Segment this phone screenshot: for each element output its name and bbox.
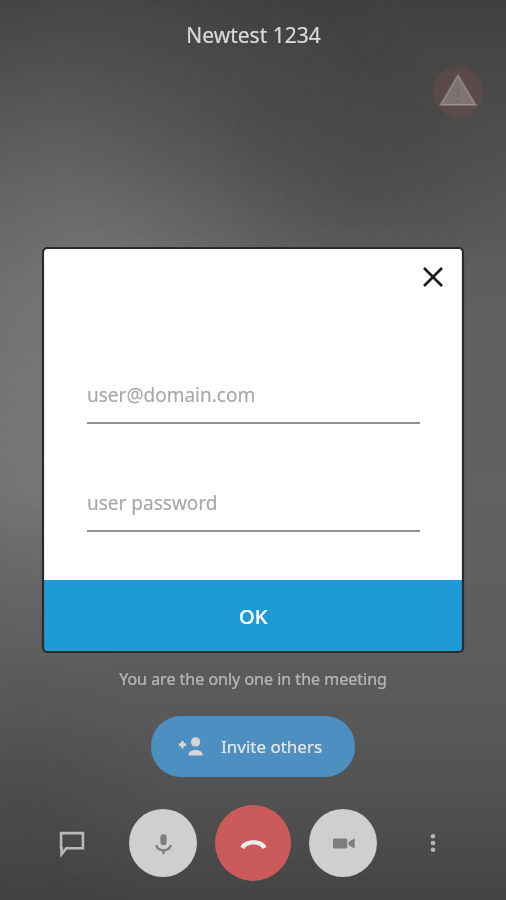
staticText: Invite others [221, 735, 323, 758]
button[interactable]: Turn off camera [309, 809, 377, 877]
staticText: user@domain.com [87, 382, 256, 408]
button[interactable]: End call [215, 805, 291, 881]
button[interactable]: Mute microphone [129, 809, 197, 877]
button[interactable]: Close [411, 255, 455, 299]
button[interactable]: OK [43, 580, 463, 652]
button[interactable]: More options [409, 819, 457, 867]
staticText: OK [239, 603, 268, 630]
staticText: Newtest 1234 [186, 21, 321, 50]
staticText: user password [87, 490, 218, 516]
staticText: You are the only one in the meeting [119, 668, 387, 690]
button[interactable]: Chat [48, 819, 96, 867]
button[interactable]: Poor connection warning [430, 64, 486, 120]
button[interactable]: Invite others [151, 716, 355, 777]
